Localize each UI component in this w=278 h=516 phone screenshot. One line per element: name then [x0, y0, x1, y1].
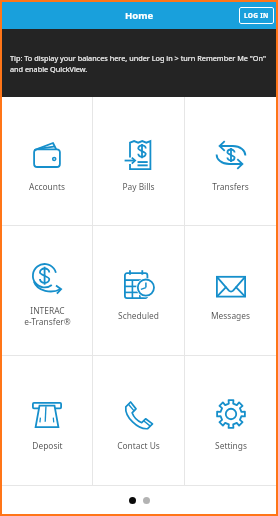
- staticText: Home: [125, 9, 154, 22]
- button[interactable]: Messages: [185, 226, 276, 355]
- button[interactable]: Scheduled: [93, 226, 184, 355]
- staticText: Transfers: [212, 181, 249, 192]
- staticText: INTERAC e-Transfer®: [24, 305, 71, 327]
- staticText: LOG IN: [244, 11, 269, 20]
- staticText: Deposit: [32, 440, 63, 451]
- staticText: Accounts: [29, 181, 65, 192]
- button[interactable]: Contact Us: [93, 356, 184, 485]
- staticText: Settings: [215, 440, 247, 451]
- button[interactable]: LOG IN: [239, 7, 274, 24]
- button[interactable]: INTERAC e-Transfer®: [2, 226, 92, 355]
- button[interactable]: Transfers: [185, 97, 276, 225]
- button[interactable]: Pay Bills: [93, 97, 184, 225]
- staticText: Messages: [211, 310, 250, 321]
- button[interactable]: Deposit: [2, 356, 92, 485]
- staticText: Contact Us: [117, 440, 160, 451]
- staticText: Pay Bills: [122, 181, 155, 192]
- button[interactable]: Accounts: [2, 97, 92, 225]
- staticText: Scheduled: [118, 310, 159, 321]
- staticText: Tip: To display your balances here, unde…: [10, 53, 266, 74]
- button[interactable]: Settings: [185, 356, 276, 485]
